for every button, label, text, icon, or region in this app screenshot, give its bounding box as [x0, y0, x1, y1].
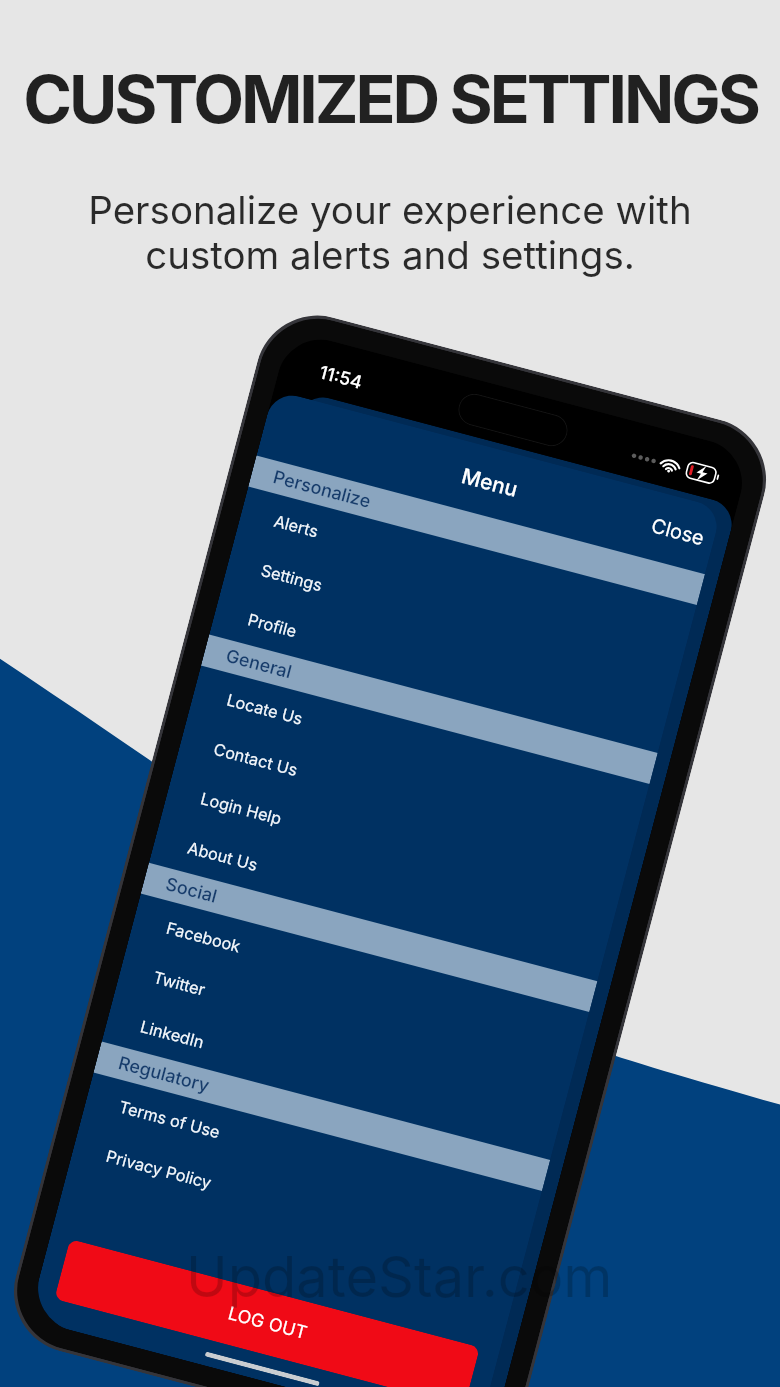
button[interactable]: LOG OUT: [54, 1239, 480, 1387]
staticText: LOG OUT: [226, 1302, 309, 1344]
button[interactable]: Profile: [209, 585, 671, 753]
staticText: Locate Us: [225, 690, 305, 729]
staticText: Menu: [459, 463, 520, 502]
staticText: Close: [649, 513, 707, 550]
staticText: Twitter: [151, 967, 208, 1000]
button[interactable]: Settings: [222, 536, 684, 704]
staticText: Alerts: [272, 511, 320, 541]
button[interactable]: Privacy Policy: [67, 1122, 529, 1289]
staticText: 11:54: [317, 361, 365, 394]
staticText: General: [223, 645, 295, 683]
staticText: UpdateStar.com: [186, 1243, 613, 1311]
staticText: Social: [163, 873, 220, 908]
staticText: About Us: [185, 837, 260, 875]
button[interactable]: Terms of Use: [80, 1072, 542, 1240]
button[interactable]: LinkedIn: [102, 992, 563, 1160]
staticText: Contact Us: [212, 739, 300, 780]
button[interactable]: Locate Us: [188, 665, 649, 833]
staticText: Settings: [259, 560, 325, 595]
staticText: Personalize your experience with custom …: [88, 187, 692, 278]
staticText: LinkedIn: [138, 1016, 206, 1052]
staticText: Profile: [246, 609, 299, 641]
button[interactable]: Login Help: [162, 764, 623, 932]
staticText: Facebook: [164, 918, 243, 956]
button[interactable]: Close: [637, 503, 719, 561]
button[interactable]: Facebook: [128, 894, 589, 1061]
button[interactable]: Alerts: [235, 486, 697, 654]
staticText: Login Help: [199, 788, 284, 829]
staticText: Personalize: [271, 466, 373, 513]
button[interactable]: Twitter: [115, 943, 576, 1111]
staticText: CUSTOMIZED SETTINGS: [23, 59, 758, 139]
button[interactable]: Contact Us: [175, 715, 636, 882]
staticText: Privacy Policy: [104, 1146, 214, 1193]
staticText: Regulatory: [116, 1052, 212, 1097]
staticText: Terms of Use: [117, 1097, 223, 1142]
button[interactable]: About Us: [149, 813, 610, 981]
